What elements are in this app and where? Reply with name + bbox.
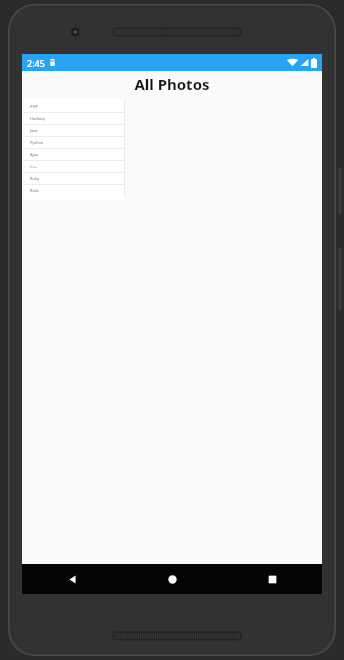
button[interactable]: Ajax bbox=[24, 149, 124, 160]
staticText: All Photos bbox=[134, 74, 210, 94]
button[interactable]: PHP bbox=[24, 101, 124, 112]
staticText: Rails bbox=[30, 188, 39, 193]
button[interactable]: C++ bbox=[24, 161, 124, 172]
staticText: C++ bbox=[30, 164, 38, 169]
button[interactable]: Java bbox=[24, 125, 124, 136]
staticText: 2:45 bbox=[27, 57, 45, 69]
staticText: Hadoop bbox=[30, 116, 45, 121]
button[interactable]: Rails bbox=[24, 185, 124, 196]
staticText: Java bbox=[30, 128, 38, 133]
button[interactable]: Python bbox=[24, 137, 124, 148]
button[interactable]: Home bbox=[122, 564, 222, 594]
button[interactable]: Recent apps bbox=[222, 564, 322, 594]
button[interactable]: Back bbox=[22, 564, 122, 594]
staticText: Ruby bbox=[30, 176, 40, 181]
staticText: Ajax bbox=[30, 152, 38, 157]
staticText: PHP bbox=[30, 104, 38, 109]
button[interactable]: Hadoop bbox=[24, 113, 124, 124]
staticText: Python bbox=[30, 140, 44, 145]
button[interactable]: Ruby bbox=[24, 173, 124, 184]
